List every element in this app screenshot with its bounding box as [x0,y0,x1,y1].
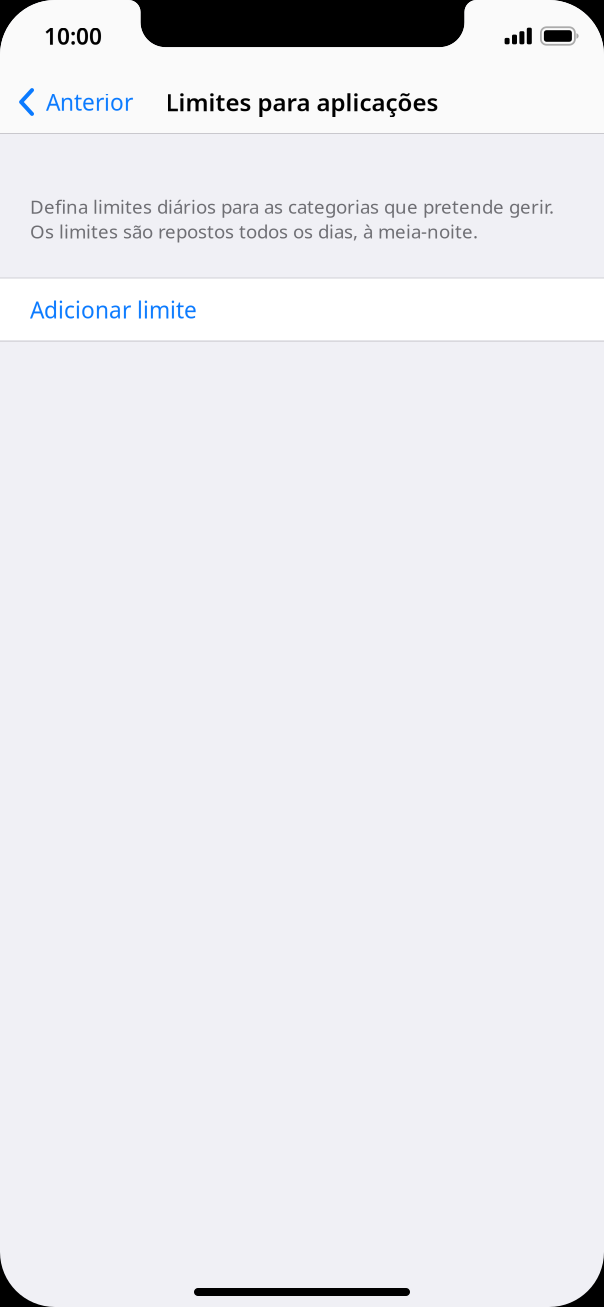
button[interactable]: Adicionar limite [0,279,604,341]
staticText: Adicionar limite [30,294,197,325]
staticText: 10:00 [44,21,102,51]
staticText: Limites para aplicações [165,86,438,118]
staticText: Anterior [46,87,133,117]
button[interactable]: Anterior [0,71,147,133]
staticText: Defina limites diários para as categoria… [30,194,554,244]
